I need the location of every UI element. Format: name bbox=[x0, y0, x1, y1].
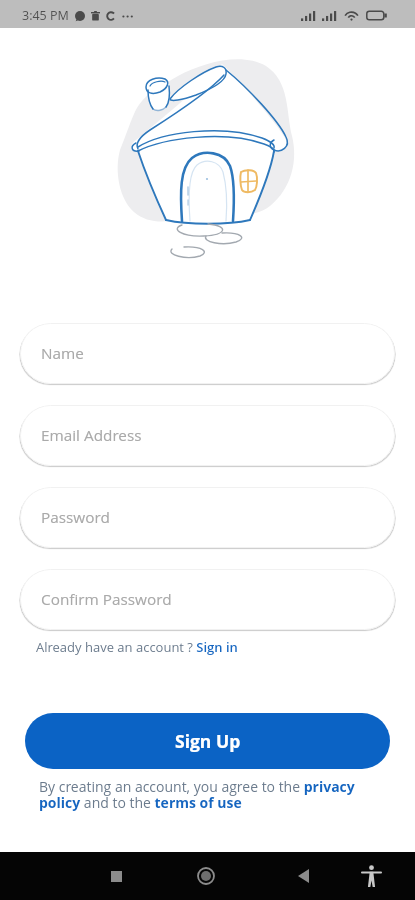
button[interactable]: Password bbox=[20, 487, 395, 548]
staticText: Sign Up bbox=[175, 729, 241, 753]
button[interactable]: Sign Up bbox=[25, 713, 390, 769]
staticText: Email Address bbox=[41, 425, 142, 446]
button[interactable]: Name bbox=[20, 323, 395, 384]
staticText: Confirm Password bbox=[41, 589, 172, 610]
button[interactable]: Email Address bbox=[20, 405, 395, 466]
staticText: Password bbox=[41, 507, 110, 528]
staticText: Name bbox=[41, 343, 84, 364]
button[interactable]: Already have an account ? Sign in bbox=[36, 638, 238, 656]
button[interactable]: Back bbox=[283, 856, 323, 896]
staticText: By creating an account, you agree to the… bbox=[39, 777, 376, 812]
button[interactable]: Recents bbox=[96, 856, 136, 896]
staticText: Already have an account ? Sign in bbox=[36, 638, 238, 656]
button[interactable]: Confirm Password bbox=[20, 569, 395, 630]
button[interactable]: Accessibility bbox=[351, 856, 391, 896]
staticText: 3:45 PM bbox=[22, 7, 69, 24]
button[interactable]: Home bbox=[186, 856, 226, 896]
